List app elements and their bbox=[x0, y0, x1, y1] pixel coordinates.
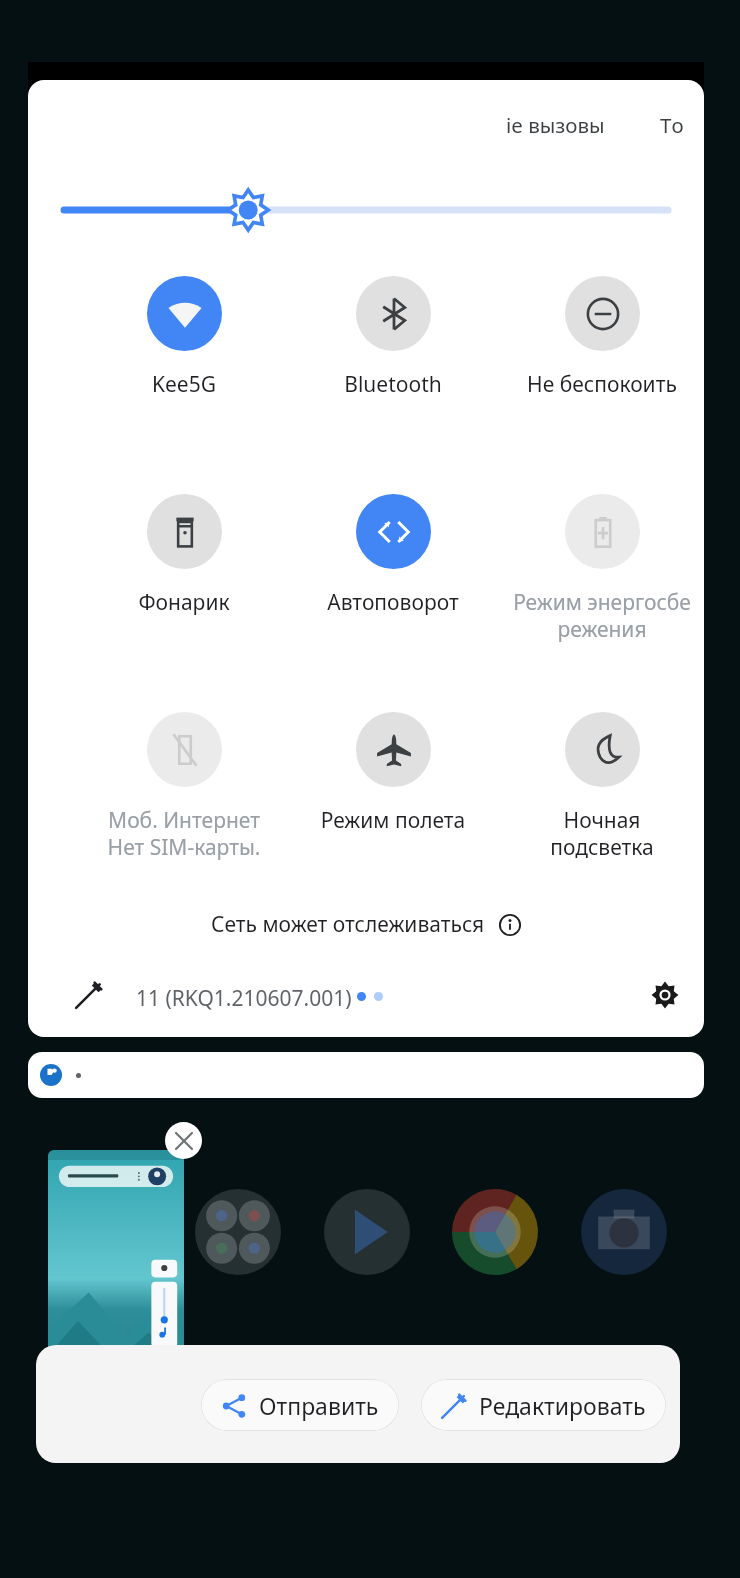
staticText: Режим энергосбе режения bbox=[512, 588, 692, 644]
button[interactable]: Режим энергосбе режения bbox=[512, 494, 692, 654]
staticText: Режим полета bbox=[303, 806, 483, 835]
staticText: Tо bbox=[660, 111, 684, 139]
button[interactable]: Редактировать bbox=[421, 1379, 666, 1431]
staticText: Моб. Интернет Нет SIM-карты. bbox=[94, 806, 274, 862]
button[interactable]: Режим полета bbox=[303, 712, 483, 872]
button[interactable]: Сеть может отслеживаться bbox=[211, 910, 521, 939]
staticText: ie вызовы bbox=[506, 111, 605, 139]
staticText: Ночная подсветка bbox=[512, 806, 692, 862]
staticText: Kee5G bbox=[94, 370, 274, 399]
button[interactable]: Автоповорот bbox=[303, 494, 483, 654]
button[interactable] bbox=[28, 185, 704, 235]
staticText: 11 (RKQ1.210607.001) bbox=[136, 984, 352, 1013]
button[interactable]: Не беспокоить bbox=[512, 276, 692, 436]
staticText: Bluetooth bbox=[303, 370, 483, 399]
staticText: Редактировать bbox=[479, 1390, 646, 1421]
staticText: Не беспокоить bbox=[512, 370, 692, 399]
button[interactable] bbox=[28, 1052, 704, 1098]
button[interactable] bbox=[48, 1150, 184, 1435]
button[interactable]: Kee5G bbox=[94, 276, 274, 436]
staticText: Отправить bbox=[259, 1390, 379, 1421]
staticText: Фонарик bbox=[94, 588, 274, 617]
button[interactable]: Отправить bbox=[201, 1379, 399, 1431]
button[interactable]: Моб. Интернет Нет SIM-карты. bbox=[94, 712, 274, 872]
button[interactable]: Bluetooth bbox=[303, 276, 483, 436]
button[interactable]: Фонарик bbox=[94, 494, 274, 654]
staticText: Автоповорот bbox=[303, 588, 483, 617]
button[interactable]: Close screenshot preview bbox=[165, 1122, 202, 1159]
button[interactable]: Ночная подсветка bbox=[512, 712, 692, 872]
staticText: Сеть может отслеживаться bbox=[211, 910, 485, 939]
button[interactable]: Settings bbox=[642, 972, 688, 1018]
button[interactable]: Edit tiles bbox=[68, 974, 110, 1016]
